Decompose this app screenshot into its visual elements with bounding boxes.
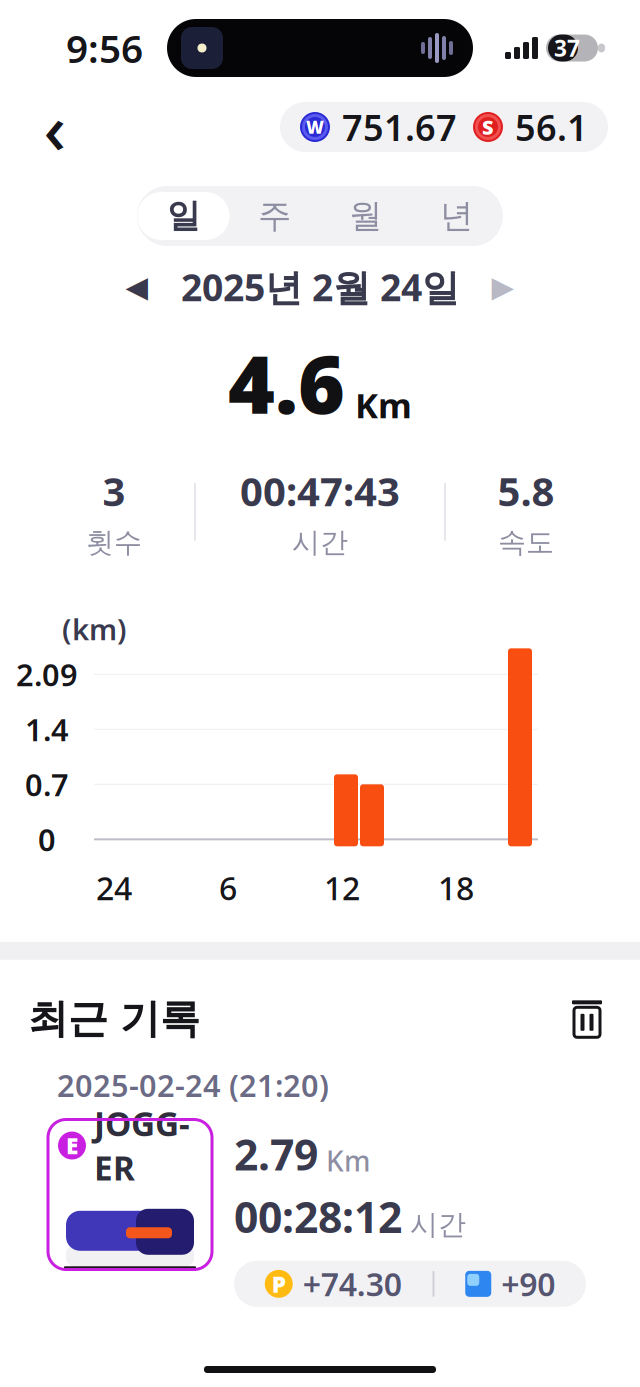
staticText: JOGGER [94,1101,190,1190]
staticText: 2.09 [16,654,78,695]
staticText: 00:28:12 [234,1188,402,1245]
staticText: 6 [219,867,237,909]
staticText: 37 [554,33,580,63]
staticText: 18 [438,867,474,909]
staticText: W [306,115,324,138]
staticText: 최근 기록 [28,994,200,1043]
staticText: ◀ [125,270,148,303]
button[interactable]: W [280,102,608,152]
staticText: (km) [62,609,127,648]
staticText: 2025-02-24 (21:20) [57,1065,329,1105]
staticText: 24 [96,867,132,909]
staticText: 시간 [410,1207,466,1242]
staticText: E [66,1130,78,1161]
staticText: 751.67 [342,103,457,151]
button[interactable]: 주 [229,189,320,243]
staticText: 일 [167,195,200,236]
button[interactable]: 2025-02-24 (21:20) [35,1064,605,1296]
button[interactable]: 일 [138,189,229,243]
staticText: Km [326,1142,371,1179]
staticText: 1.4 [25,709,69,750]
staticText: 월 [349,195,382,236]
staticText: 0 [38,819,56,860]
button[interactable]: Previous day [115,265,159,309]
staticText: 0.7 [25,764,69,805]
staticText: P [272,1269,286,1299]
staticText: ▶ [491,270,514,303]
staticText: 4.6 [228,330,345,436]
staticText: 3 [102,464,125,517]
button[interactable]: 년 [411,189,502,243]
button[interactable]: 월 [320,189,411,243]
staticText: +74.30 [303,1263,402,1305]
staticText: ‹ [43,81,66,173]
staticText: 56.1 [515,103,588,151]
button[interactable]: Next day [481,265,525,309]
staticText: Km [355,382,412,428]
staticText: 년 [440,195,473,236]
staticText: 속도 [498,525,554,560]
staticText: 5.8 [497,464,554,517]
button[interactable]: Back [24,96,86,158]
staticText: 9:56 [66,22,143,74]
staticText: 00:47:43 [240,464,400,517]
button[interactable]: Delete all records [560,992,614,1046]
staticText: 주 [258,195,291,236]
staticText: +90 [501,1263,555,1305]
staticText: S [482,114,494,140]
staticText: 12 [324,867,360,909]
staticText: 시간 [292,525,348,560]
staticText: 횟수 [86,525,142,560]
staticText: 2.79 [234,1125,318,1182]
staticText: 2025년 2월 24일 [181,262,459,312]
